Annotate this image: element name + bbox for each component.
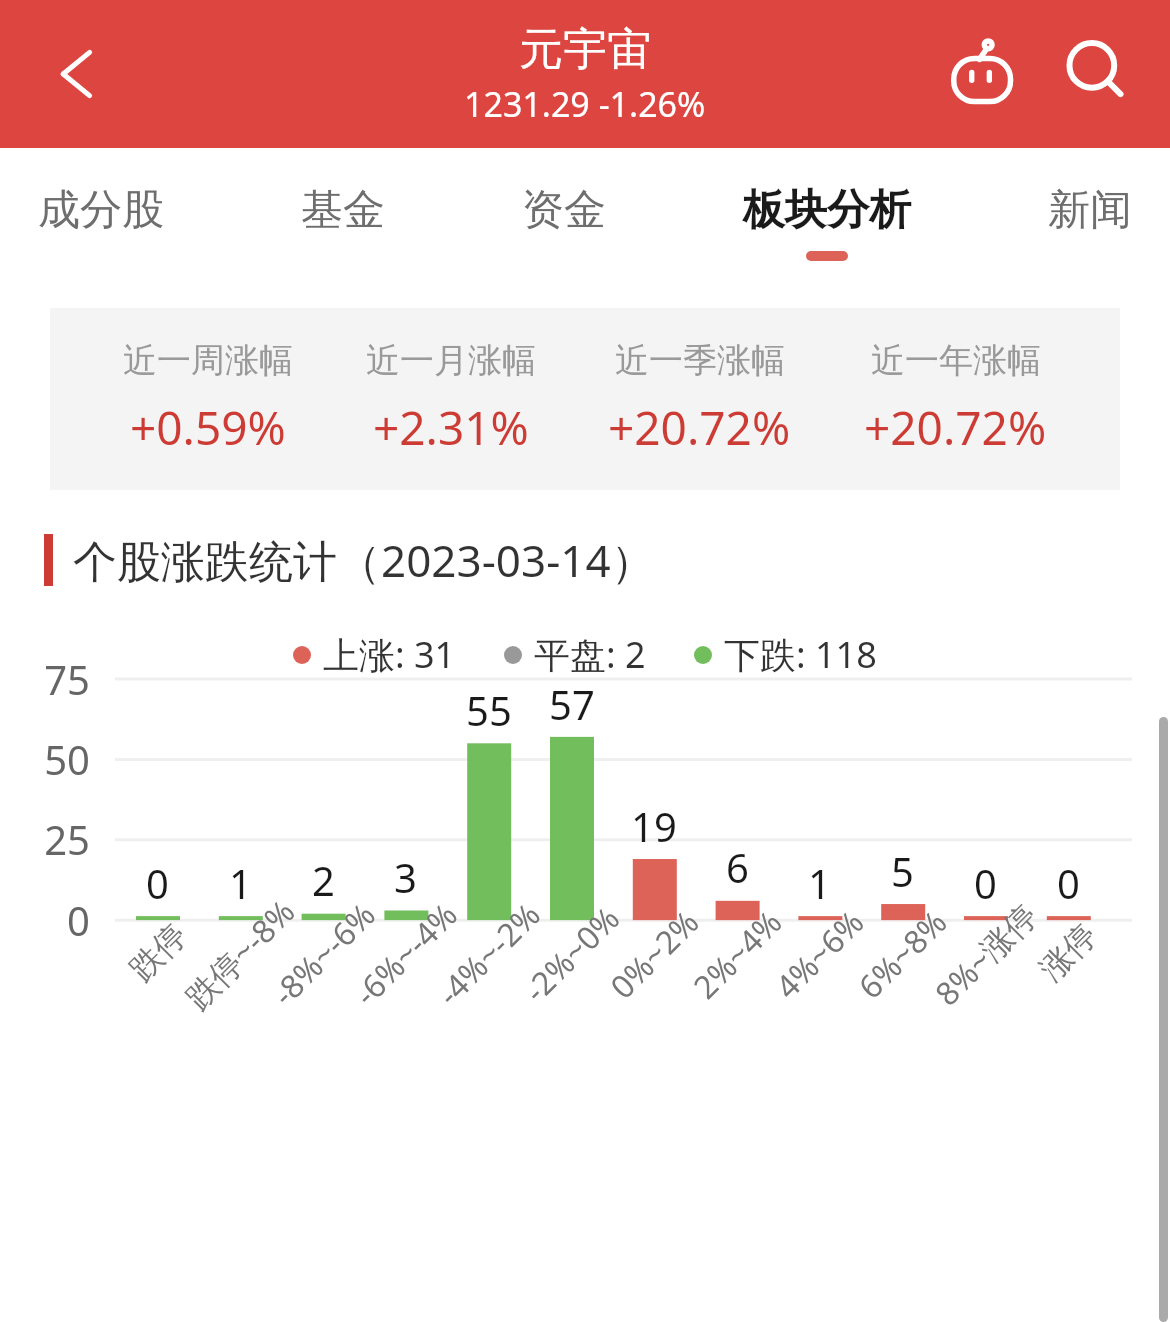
staticText: 25 xyxy=(44,812,90,866)
staticText: 个股涨跌统计（2023-03-14） xyxy=(73,530,655,590)
staticText: 6%~8% xyxy=(848,900,957,1008)
staticText: 55 xyxy=(466,683,512,737)
staticText: 50 xyxy=(44,732,90,786)
staticText: 下跌: 118 xyxy=(724,630,877,679)
staticText: 0 xyxy=(1057,856,1080,910)
staticText: 1231.29 -1.26% xyxy=(464,81,706,127)
button[interactable]: 新闻 xyxy=(1048,148,1132,251)
button[interactable]: Assistant robot xyxy=(940,31,1026,117)
button[interactable]: 成分股 xyxy=(38,148,164,251)
button[interactable]: 资金 xyxy=(522,148,606,251)
staticText: -2%~0% xyxy=(514,896,629,1012)
button[interactable]: 板块分析 xyxy=(743,148,911,261)
button[interactable]: 基金 xyxy=(301,148,385,251)
staticText: 1 xyxy=(808,856,831,910)
staticText: 2 xyxy=(312,853,335,907)
staticText: +20.72% xyxy=(608,396,791,459)
staticText: 近一季涨幅 xyxy=(615,339,785,382)
button[interactable]: Back xyxy=(28,34,108,114)
staticText: 4%~6% xyxy=(765,900,874,1008)
staticText: +20.72% xyxy=(864,396,1047,459)
staticText: 成分股 xyxy=(38,184,164,237)
staticText: 0 xyxy=(974,856,997,910)
staticText: 6 xyxy=(726,840,749,894)
staticText: 8%~涨停 xyxy=(925,893,1047,1015)
staticText: 近一周涨幅 xyxy=(123,339,293,382)
staticText: 0%~2% xyxy=(600,900,709,1008)
staticText: 板块分析 xyxy=(743,184,911,237)
button[interactable]: Search xyxy=(1054,31,1140,117)
staticText: 0 xyxy=(146,856,169,910)
staticText: 1 xyxy=(229,856,252,910)
staticText: 0 xyxy=(67,893,90,947)
staticText: 近一年涨幅 xyxy=(871,339,1041,382)
staticText: -6%~-4% xyxy=(344,893,467,1015)
staticText: 基金 xyxy=(301,184,385,237)
staticText: 跌停~-8% xyxy=(176,890,304,1018)
staticText: 19 xyxy=(631,799,677,853)
staticText: -8%~-6% xyxy=(262,893,385,1015)
staticText: 上涨: 31 xyxy=(323,630,456,679)
staticText: 3 xyxy=(394,850,417,904)
staticText: 跌停 xyxy=(121,915,195,989)
staticText: 平盘: 2 xyxy=(534,630,646,679)
staticText: 5 xyxy=(891,844,914,898)
staticText: +2.31% xyxy=(373,396,529,459)
staticText: 75 xyxy=(44,652,90,706)
staticText: +0.59% xyxy=(130,396,286,459)
staticText: 涨停 xyxy=(1031,915,1105,989)
staticText: 元宇宙 xyxy=(519,22,651,77)
staticText: 新闻 xyxy=(1048,184,1132,237)
staticText: 资金 xyxy=(522,184,606,237)
staticText: 57 xyxy=(549,677,595,731)
staticText: 近一月涨幅 xyxy=(366,339,536,382)
staticText: 2%~4% xyxy=(683,900,792,1008)
staticText: -4%~-2% xyxy=(427,893,550,1015)
